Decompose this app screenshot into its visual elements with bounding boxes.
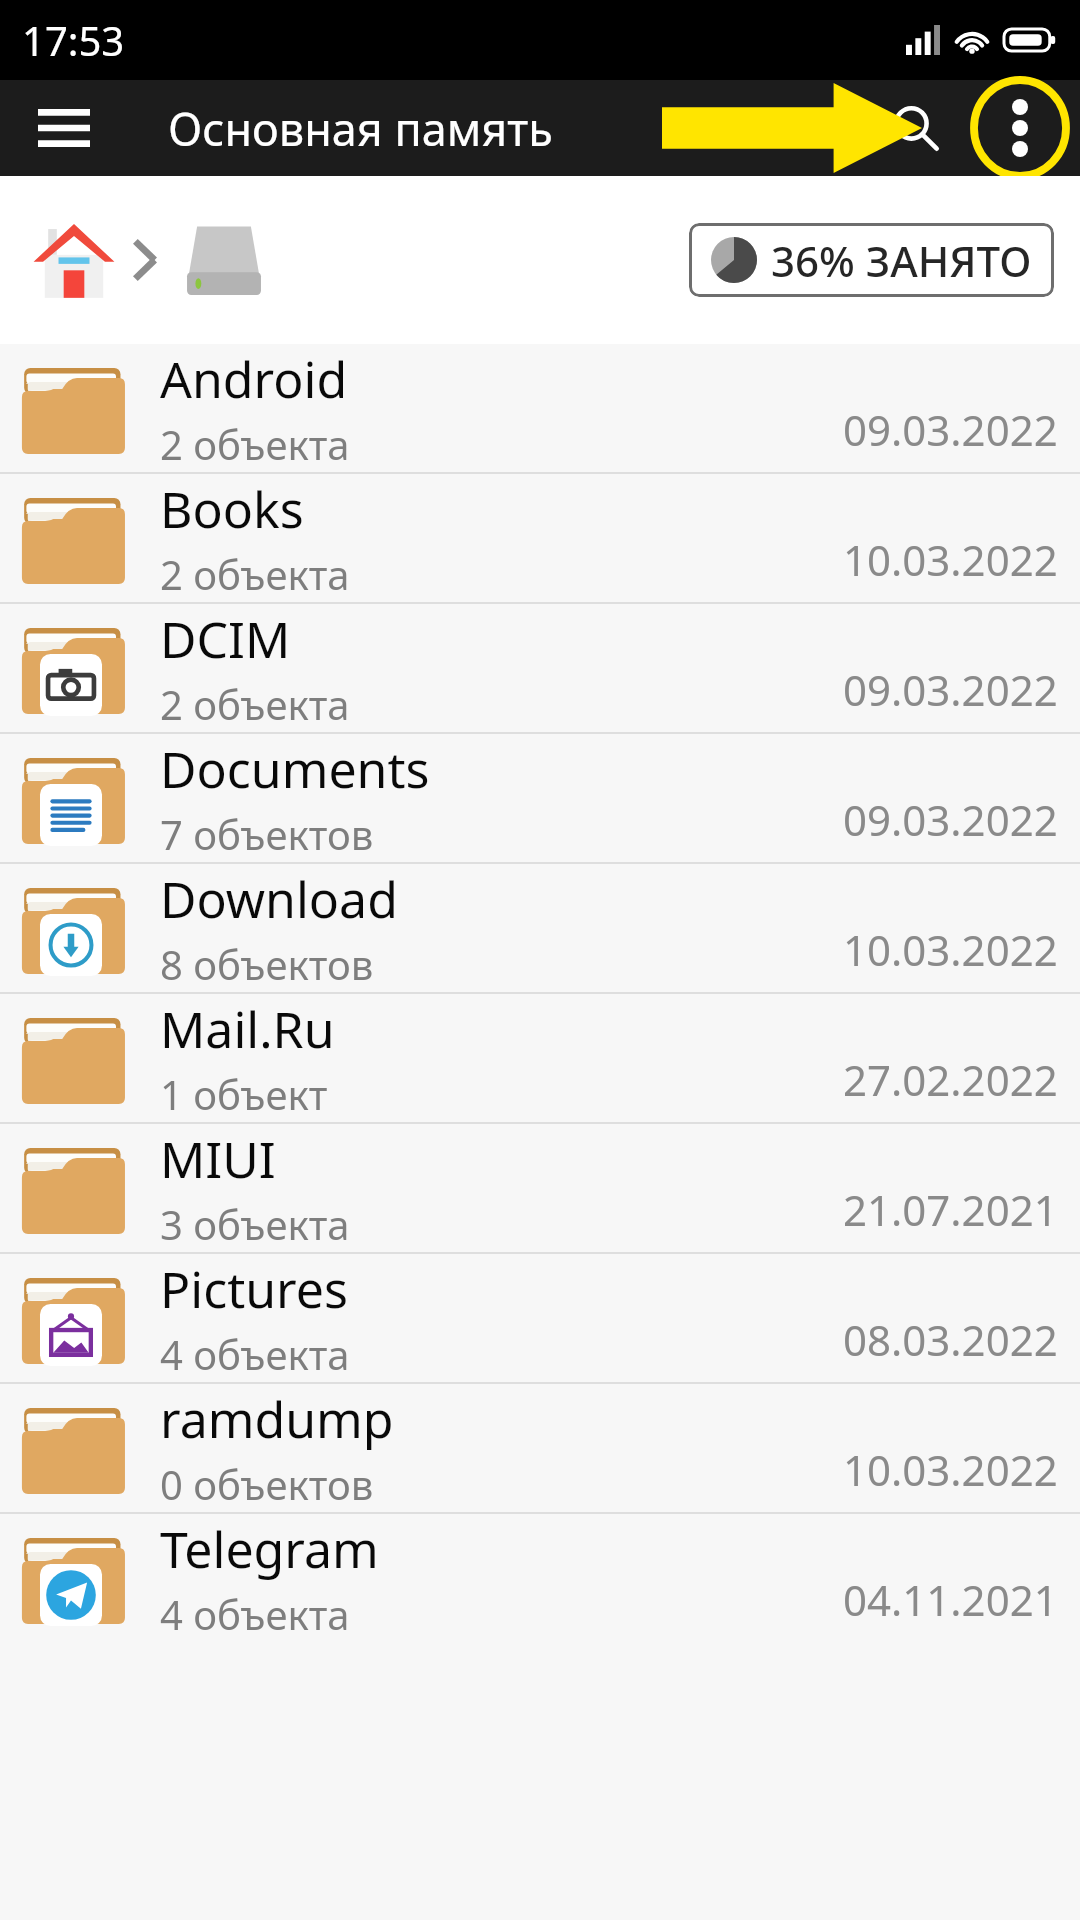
- staticText: 3 объекта: [160, 1197, 350, 1251]
- staticText: 10.03.2022: [843, 531, 1058, 588]
- staticText: 17:53: [22, 13, 125, 67]
- staticText: 1 объект: [160, 1067, 328, 1121]
- staticText: 36% ЗАНЯТО: [771, 232, 1032, 289]
- staticText: Android: [160, 345, 348, 413]
- staticText: 2 объекта: [160, 547, 350, 601]
- staticText: Основная память: [168, 98, 553, 159]
- button[interactable]: Поиск: [872, 84, 960, 172]
- button[interactable]: Telegram: [0, 1514, 1080, 1642]
- staticText: 10.03.2022: [843, 921, 1058, 978]
- button[interactable]: Главная: [26, 212, 122, 308]
- staticText: 7 объектов: [160, 807, 374, 861]
- staticText: 08.03.2022: [843, 1311, 1058, 1368]
- staticText: 27.02.2022: [843, 1051, 1058, 1108]
- staticText: 4 объекта: [160, 1587, 350, 1641]
- button[interactable]: MIUI: [0, 1124, 1080, 1252]
- staticText: Mail.Ru: [160, 995, 335, 1063]
- staticText: 21.07.2021: [843, 1181, 1058, 1238]
- button[interactable]: 36% ЗАНЯТО: [689, 223, 1054, 297]
- staticText: Books: [160, 475, 304, 543]
- staticText: 8 объектов: [160, 937, 374, 991]
- staticText: 10.03.2022: [843, 1441, 1058, 1498]
- staticText: DCIM: [160, 605, 291, 673]
- button[interactable]: Mail.Ru: [0, 994, 1080, 1122]
- staticText: 2 объекта: [160, 417, 350, 471]
- staticText: 0 объектов: [160, 1457, 374, 1511]
- button[interactable]: Pictures: [0, 1254, 1080, 1382]
- staticText: 4 объекта: [160, 1327, 350, 1381]
- staticText: Download: [160, 865, 398, 933]
- staticText: 09.03.2022: [843, 791, 1058, 848]
- staticText: ramdump: [160, 1385, 394, 1453]
- staticText: 09.03.2022: [843, 401, 1058, 458]
- button[interactable]: Основная память: [176, 212, 272, 308]
- button[interactable]: Download: [0, 864, 1080, 992]
- staticText: Telegram: [160, 1515, 379, 1583]
- staticText: 2 объекта: [160, 677, 350, 731]
- button[interactable]: ramdump: [0, 1384, 1080, 1512]
- staticText: MIUI: [160, 1125, 276, 1193]
- staticText: 04.11.2021: [843, 1571, 1058, 1628]
- staticText: 09.03.2022: [843, 661, 1058, 718]
- staticText: Pictures: [160, 1255, 348, 1323]
- button[interactable]: Android: [0, 344, 1080, 472]
- button[interactable]: Documents: [0, 734, 1080, 862]
- button[interactable]: Меню: [22, 86, 106, 170]
- button[interactable]: Books: [0, 474, 1080, 602]
- staticText: Documents: [160, 735, 430, 803]
- button[interactable]: DCIM: [0, 604, 1080, 732]
- button[interactable]: Ещё: [976, 84, 1064, 172]
